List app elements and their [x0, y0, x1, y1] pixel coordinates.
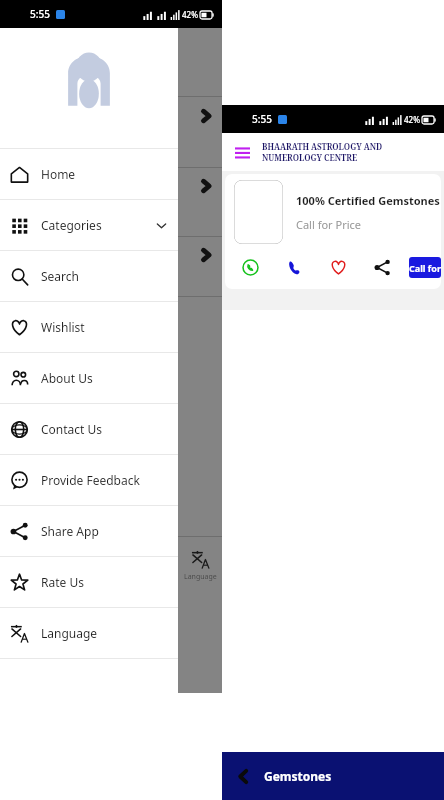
button[interactable]: Language	[178, 540, 222, 592]
staticText: About Us	[41, 370, 168, 386]
button[interactable]: Wishlist	[0, 302, 178, 352]
button[interactable]: Home	[0, 149, 178, 199]
staticText: Gemstones	[264, 768, 332, 784]
staticText: Provide Feedback	[41, 472, 168, 488]
button[interactable]: Language	[0, 608, 178, 658]
staticText: 5:55	[30, 7, 50, 21]
staticText: 100% Certified Gemstones	[296, 193, 440, 208]
staticText: Language	[41, 625, 168, 641]
staticText: Call for Price	[296, 217, 362, 232]
button[interactable]: Call for Price	[409, 257, 441, 278]
button[interactable]: Search	[0, 251, 178, 301]
button[interactable]: Categories	[0, 200, 178, 250]
button[interactable]: 100% Certified Gemstones	[225, 174, 441, 289]
button[interactable]: Back	[232, 765, 254, 787]
staticText: Language	[184, 572, 217, 582]
staticText: NUMEROLOGY CENTRE	[262, 152, 358, 163]
staticText: Rate Us	[41, 574, 168, 590]
button[interactable]: Share App	[0, 506, 178, 556]
button[interactable]: Call	[283, 256, 305, 278]
staticText: 5:55	[252, 112, 272, 126]
staticText: Wishlist	[41, 319, 168, 335]
button[interactable]: Contact Us	[0, 404, 178, 454]
staticText: BHAARATH ASTROLOGY AND	[262, 141, 383, 152]
staticText: Contact Us	[41, 421, 168, 437]
staticText: Categories	[41, 217, 155, 233]
staticText: 42%	[182, 9, 198, 20]
button[interactable]: Rate Us	[0, 557, 178, 607]
staticText: Call for Price	[409, 262, 441, 274]
button[interactable]: WhatsApp	[239, 256, 261, 278]
button[interactable]: About Us	[0, 353, 178, 403]
button[interactable]: Provide Feedback	[0, 455, 178, 505]
staticText: Home	[41, 166, 168, 182]
button[interactable]: Share	[371, 256, 393, 278]
staticText: 42%	[404, 114, 420, 125]
staticText: Share App	[41, 523, 168, 539]
staticText: Search	[41, 268, 168, 284]
button[interactable]: Add to wishlist	[327, 256, 349, 278]
button[interactable]: Open navigation menu	[232, 142, 252, 162]
